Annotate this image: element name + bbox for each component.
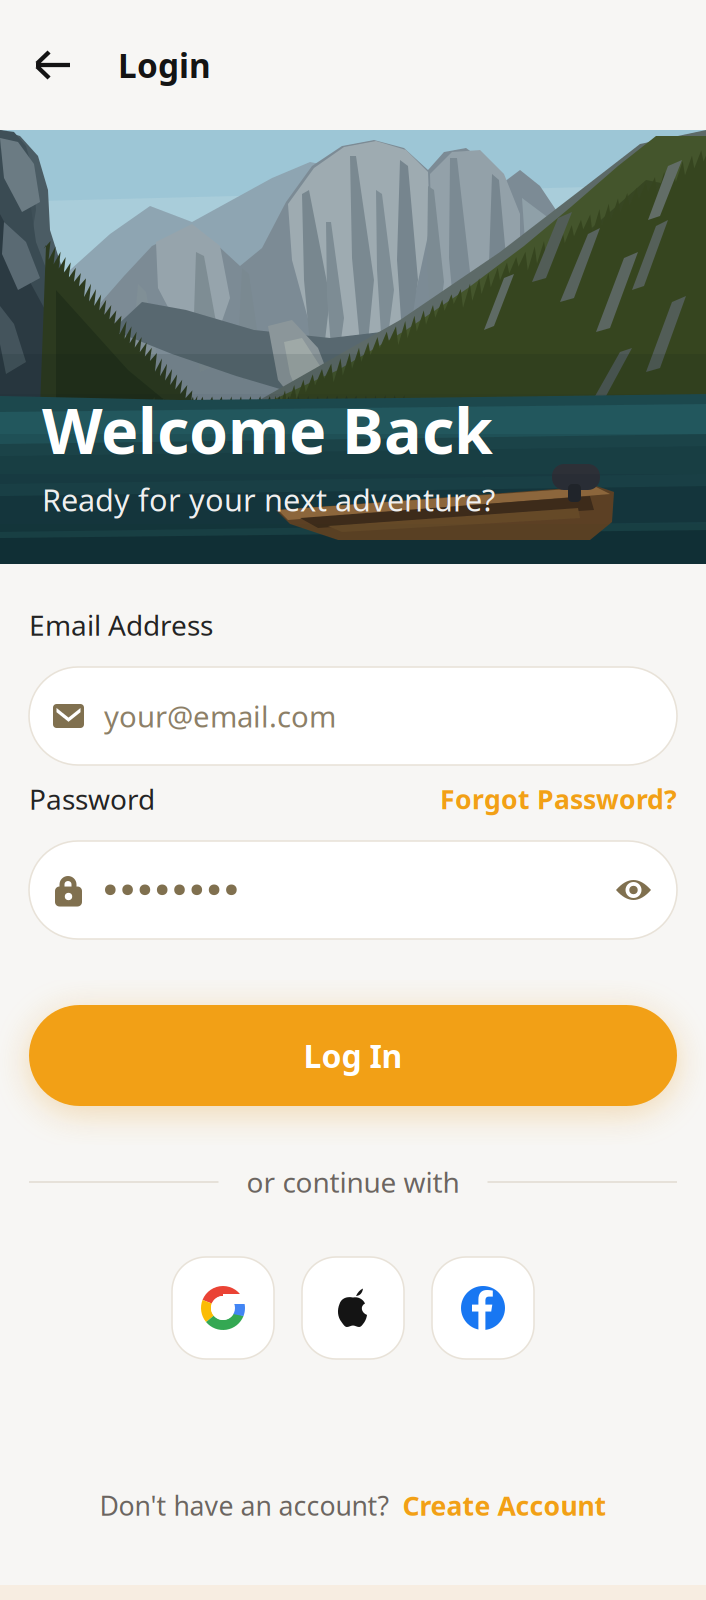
button[interactable]: Sign in with Google [172,1257,274,1359]
button[interactable]: Log In [29,1005,677,1106]
staticText: Welcome Back [42,388,493,471]
staticText: Email Address [29,606,213,644]
staticText: your@email.com [104,696,336,735]
button[interactable]: Sign in with Facebook [432,1257,534,1359]
staticText: Ready for your next adventure? [42,479,495,520]
staticText: Create Account [402,1488,606,1523]
staticText: Log In [303,1034,402,1077]
staticText: Login [118,43,211,87]
button[interactable]: Forgot Password? [440,781,677,817]
staticText: Password [29,780,155,818]
button[interactable]: Sign in with Apple [302,1257,404,1359]
staticText: Forgot Password? [440,781,677,817]
button[interactable]: Show password [616,877,651,903]
staticText: or continue with [246,1163,459,1201]
button[interactable]: Back [18,27,88,103]
button[interactable]: Create Account [402,1488,606,1523]
staticText: Don't have an account? [99,1488,389,1523]
